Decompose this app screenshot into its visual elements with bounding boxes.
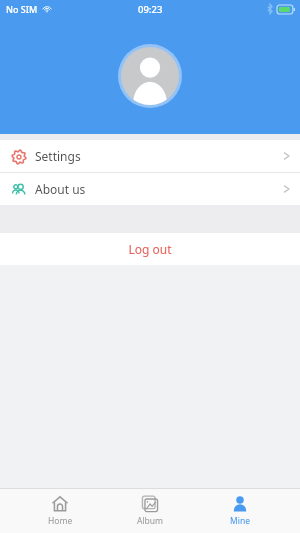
staticText: About us: [35, 181, 86, 197]
button[interactable]: Mine: [210, 489, 270, 533]
button[interactable]: Album: [120, 489, 180, 533]
staticText: 09:23: [138, 3, 163, 16]
button[interactable]: Home: [30, 489, 90, 533]
button[interactable]: Log out: [0, 233, 300, 265]
staticText: Log out: [128, 241, 172, 257]
staticText: Home: [48, 515, 73, 527]
staticText: Settings: [35, 148, 81, 164]
staticText: No SIM: [6, 3, 38, 15]
staticText: Album: [137, 515, 164, 527]
staticText: Mine: [230, 515, 250, 527]
button[interactable]: About us: [0, 173, 300, 205]
button[interactable]: Settings: [0, 140, 300, 172]
